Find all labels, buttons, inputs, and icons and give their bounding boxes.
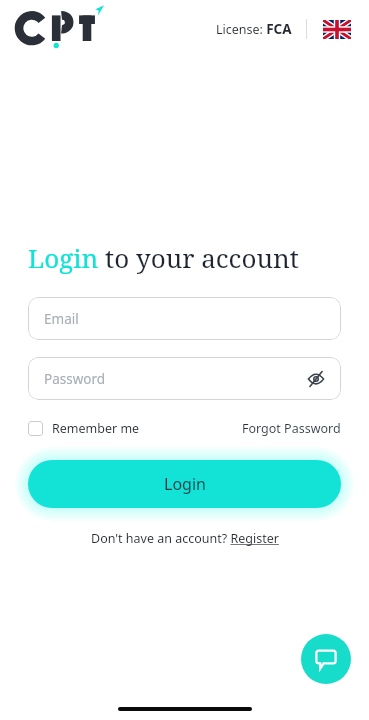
button[interactable]: Login (28, 460, 341, 508)
staticText: Login (164, 473, 206, 495)
staticText: Remember me (52, 420, 140, 437)
button[interactable]: CPT logo (18, 9, 110, 49)
staticText: Password (44, 370, 106, 388)
button[interactable]: Email (28, 297, 341, 340)
button[interactable]: Password (28, 357, 341, 400)
staticText: Email (44, 310, 79, 328)
button[interactable]: Remember me (28, 420, 140, 437)
button[interactable]: Show password (305, 368, 327, 390)
staticText: Forgot Password (242, 420, 341, 437)
button[interactable]: Language: English (323, 20, 351, 39)
staticText: License: FCA (216, 20, 292, 38)
staticText: Don't have an account? Register (91, 530, 279, 547)
staticText: Login to your account (28, 240, 299, 275)
button[interactable]: Forgot Password (242, 420, 341, 437)
button[interactable]: Don't have an account? Register (91, 530, 279, 547)
button[interactable]: Open chat support (301, 634, 351, 684)
